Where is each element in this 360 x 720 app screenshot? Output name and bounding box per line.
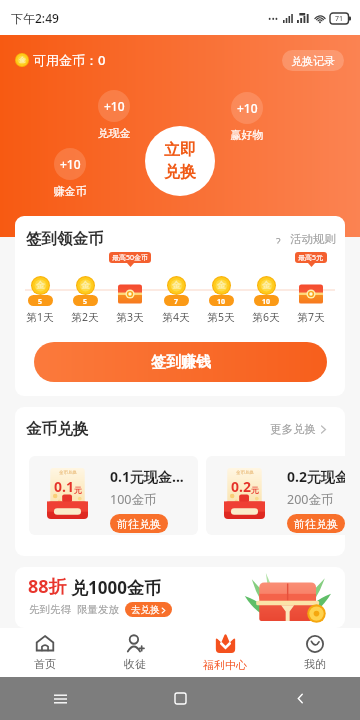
other: Home <box>175 693 186 704</box>
staticText: 5 <box>83 297 88 306</box>
staticText: 0.2元现金... <box>287 467 345 486</box>
button[interactable]: +10 <box>45 148 95 198</box>
staticText: 88折 <box>28 574 67 599</box>
staticText: 签到赚钱 <box>151 353 211 372</box>
staticText: 第2天 <box>64 310 106 324</box>
button[interactable]: Invite <box>90 628 180 677</box>
staticText: 71 <box>335 14 344 24</box>
staticText: 下午2:49 <box>11 10 59 26</box>
button[interactable]: 金币兑换 <box>206 456 345 535</box>
button[interactable]: 立即 <box>145 126 215 196</box>
button[interactable]: 签到赚钱 <box>34 342 327 382</box>
button[interactable]: Welfare center <box>180 628 270 677</box>
button[interactable]: 88折 <box>15 567 345 628</box>
staticText: 去兑换 <box>131 604 160 616</box>
staticText: 金 <box>262 280 271 291</box>
button[interactable]: 金 <box>15 51 106 69</box>
staticText: 最高5元 <box>298 253 324 263</box>
button[interactable]: 7 <box>155 252 197 324</box>
staticText: 可用金币：0 <box>33 51 106 69</box>
staticText: 金 <box>81 280 90 291</box>
staticText: 第7天 <box>290 310 332 324</box>
button[interactable]: 5 <box>19 252 61 324</box>
staticText: 签到领金币 <box>26 229 104 249</box>
staticText: 福利中心 <box>203 658 247 672</box>
staticText: 更多兑换 <box>270 422 316 436</box>
staticText: 立即 <box>164 140 196 160</box>
staticText: 兑现金 <box>89 126 139 140</box>
staticText: 金币兑换 <box>26 419 88 439</box>
button[interactable]: 去兑换 <box>125 602 172 617</box>
staticText: +10 <box>60 156 81 172</box>
other: Recent apps <box>54 694 67 704</box>
button[interactable]: +10 <box>89 90 139 140</box>
staticText: 元 <box>74 485 82 495</box>
button[interactable]: My profile <box>270 628 360 677</box>
staticText: +10 <box>104 98 125 114</box>
staticText: 0.1元现金... <box>110 467 184 486</box>
staticText: 100金币 <box>110 491 157 508</box>
other: Back <box>295 693 306 704</box>
staticText: 兑1000金币 <box>71 576 161 599</box>
staticText: 第4天 <box>155 310 197 324</box>
staticText: 200金币 <box>287 491 334 508</box>
button[interactable]: 兑换记录 <box>282 50 344 71</box>
staticText: 金 <box>172 280 181 291</box>
staticText: 10 <box>217 297 226 306</box>
staticText: 第3天 <box>109 310 151 324</box>
staticText: 赚金币 <box>45 184 95 198</box>
staticText: +10 <box>237 100 258 116</box>
button[interactable]: 10 <box>200 252 242 324</box>
button[interactable]: 更多兑换 <box>270 422 327 436</box>
button[interactable]: ? <box>274 232 336 246</box>
staticText: 第1天 <box>19 310 61 324</box>
button[interactable]: 前往兑换 <box>110 514 168 533</box>
staticText: ••• <box>268 12 279 24</box>
staticText: 金 <box>36 280 45 291</box>
staticText: 5 <box>38 297 43 306</box>
button[interactable]: +10 <box>222 92 272 142</box>
button[interactable]: 金币兑换 <box>29 456 198 535</box>
staticText: ? <box>276 235 281 244</box>
staticText: 金 <box>217 280 226 291</box>
staticText: 金币兑换 <box>59 470 77 476</box>
staticText: 收徒 <box>124 657 146 671</box>
staticText: 0.2 <box>231 477 251 496</box>
staticText: 活动规则 <box>290 232 336 246</box>
staticText: 金 <box>19 56 26 64</box>
staticText: 前往兑换 <box>294 517 338 531</box>
staticText: 0.1 <box>54 477 74 496</box>
staticText: 兑换记录 <box>291 54 335 68</box>
staticText: 第6天 <box>245 310 287 324</box>
button[interactable]: 10 <box>245 252 287 324</box>
staticText: 最高50金币 <box>112 253 148 263</box>
staticText: 兑换 <box>164 162 196 182</box>
staticText: 第5天 <box>200 310 242 324</box>
button[interactable]: 最高5元 <box>290 252 332 324</box>
staticText: 赢好物 <box>222 128 272 142</box>
button[interactable]: 5 <box>64 252 106 324</box>
staticText: 我的 <box>304 657 326 671</box>
staticText: 先到先得 <box>29 603 71 616</box>
staticText: 7 <box>174 297 179 306</box>
button[interactable]: 最高50金币 <box>109 252 151 324</box>
staticText: 金币兑换 <box>236 470 254 476</box>
button[interactable]: 前往兑换 <box>287 514 345 533</box>
staticText: 元 <box>251 485 259 495</box>
button[interactable]: Home <box>0 628 90 677</box>
staticText: 首页 <box>34 657 56 671</box>
staticText: 限量发放 <box>77 603 119 616</box>
staticText: 10 <box>262 297 271 306</box>
staticText: 前往兑换 <box>117 517 161 531</box>
